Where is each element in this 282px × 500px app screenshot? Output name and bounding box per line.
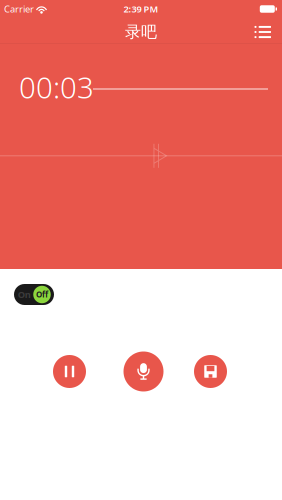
staticText: Off [36, 289, 48, 300]
staticText: Carrier [4, 3, 34, 15]
button[interactable]: Record [123, 351, 163, 391]
button[interactable]: Recordings list [247, 21, 278, 43]
staticText: 00:03 [19, 67, 94, 106]
button[interactable]: Pause [53, 355, 86, 388]
staticText: 2:39 PM [123, 3, 158, 15]
staticText: On [18, 288, 31, 301]
button[interactable]: Recording toggle [14, 284, 54, 305]
button[interactable]: Save [194, 355, 227, 388]
staticText: 录吧 [125, 22, 157, 42]
